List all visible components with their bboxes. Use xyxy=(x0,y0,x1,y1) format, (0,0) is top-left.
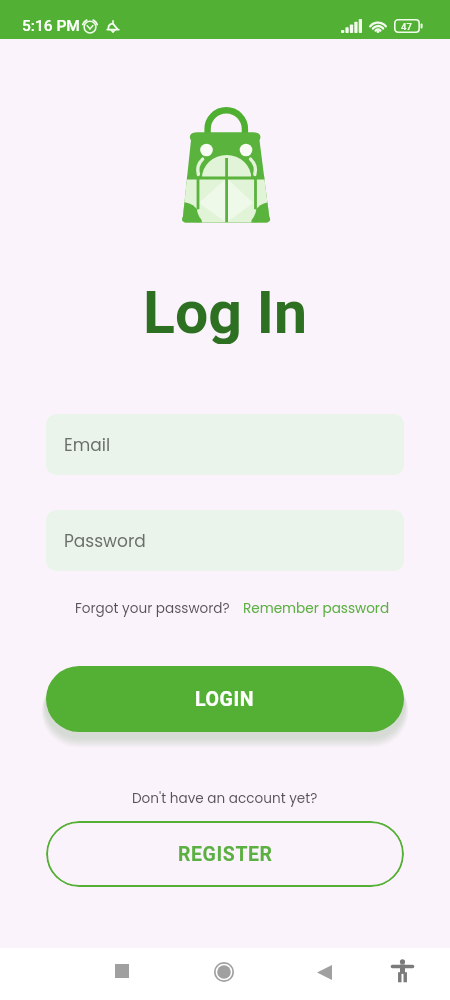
button[interactable]: Email xyxy=(46,414,404,475)
staticText: REGISTER xyxy=(178,843,273,866)
button[interactable]: REGISTER xyxy=(46,821,404,887)
staticText: 5:16 PM xyxy=(22,17,80,35)
staticText: 47 xyxy=(401,21,412,32)
staticText: Don't have an account yet? xyxy=(132,789,318,808)
staticText: Password xyxy=(64,529,146,553)
staticText: Log In xyxy=(143,278,307,344)
button[interactable]: LOGIN xyxy=(46,666,404,732)
staticText: Email xyxy=(64,433,111,457)
button[interactable]: Accessibility xyxy=(380,949,424,993)
staticText: LOGIN xyxy=(195,688,255,711)
button[interactable]: Back xyxy=(302,950,346,994)
button[interactable]: Remember password xyxy=(243,599,390,618)
button[interactable]: Home xyxy=(202,950,246,994)
staticText: Forgot your password? xyxy=(75,599,230,618)
button[interactable]: Recent apps xyxy=(100,949,144,993)
staticText: Remember password xyxy=(243,599,390,618)
button[interactable]: Password xyxy=(46,510,404,571)
